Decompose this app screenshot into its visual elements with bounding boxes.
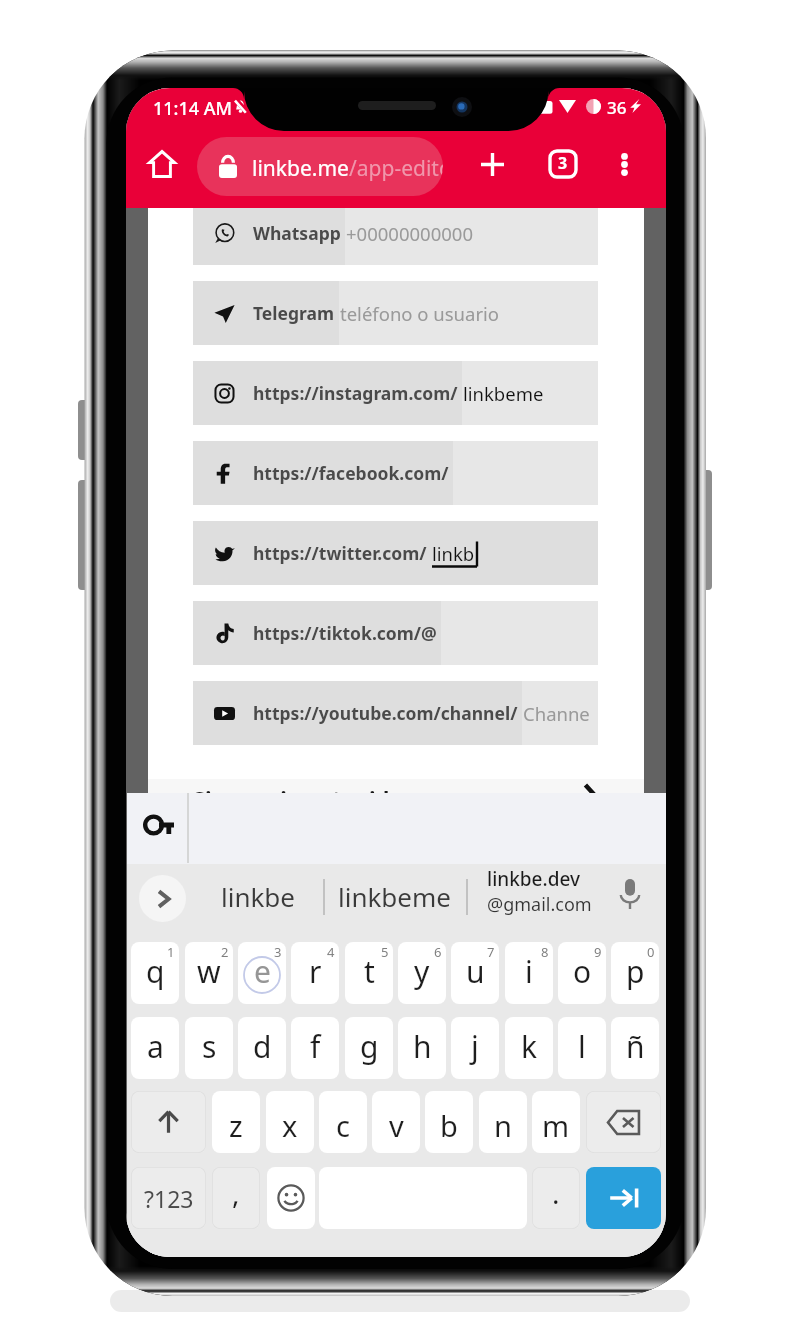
button[interactable]: More options bbox=[598, 135, 650, 193]
button[interactable]: https://twitter.com/ bbox=[193, 521, 598, 585]
button[interactable]: https://facebook.com/ bbox=[193, 441, 598, 505]
staticText: linkbe.me bbox=[252, 154, 349, 183]
staticText: https://twitter.com/ bbox=[253, 541, 427, 565]
button[interactable]: Voice input bbox=[609, 873, 651, 915]
button[interactable]: b bbox=[425, 1091, 473, 1153]
staticText: q bbox=[146, 951, 165, 992]
button[interactable]: Backspace bbox=[586, 1091, 661, 1153]
staticText: z bbox=[229, 1106, 243, 1145]
staticText: Whatsapp bbox=[253, 221, 341, 245]
button[interactable]: ñ bbox=[611, 1017, 659, 1079]
staticText: m bbox=[542, 1106, 570, 1145]
staticText: https://youtube.com/channel/ bbox=[253, 701, 518, 725]
button[interactable]: p bbox=[611, 942, 659, 1004]
button[interactable]: g bbox=[345, 1017, 393, 1079]
staticText: g bbox=[360, 1026, 379, 1067]
staticText: Channe bbox=[523, 701, 590, 726]
button[interactable]: Home bbox=[134, 135, 190, 193]
staticText: 3 bbox=[558, 152, 568, 174]
staticText: 9 bbox=[594, 943, 602, 961]
staticText: e bbox=[254, 951, 271, 992]
button[interactable]: linkbe.dev bbox=[487, 866, 592, 917]
button[interactable]: Telegram bbox=[193, 281, 598, 345]
button[interactable]: n bbox=[479, 1091, 527, 1153]
staticText: a bbox=[147, 1026, 164, 1067]
button[interactable]: Emoji bbox=[267, 1167, 315, 1229]
staticText: b bbox=[440, 1106, 458, 1145]
button[interactable]: x bbox=[266, 1091, 314, 1153]
button[interactable]: o bbox=[558, 942, 606, 1004]
button[interactable]: Whatsapp bbox=[193, 201, 598, 265]
button[interactable]: r bbox=[291, 942, 339, 1004]
staticText: @gmail.com bbox=[487, 892, 592, 917]
button[interactable]: w bbox=[185, 942, 233, 1004]
staticText: t bbox=[364, 951, 375, 992]
staticText: /app-edito bbox=[349, 154, 443, 183]
staticText: h bbox=[413, 1026, 432, 1067]
staticText: Telegram bbox=[253, 301, 335, 325]
button[interactable]: l bbox=[558, 1017, 606, 1079]
staticText: 7 bbox=[487, 943, 495, 961]
staticText: +00000000000 bbox=[346, 221, 473, 246]
staticText: c bbox=[336, 1106, 350, 1145]
staticText: https://facebook.com/ bbox=[253, 461, 449, 485]
button[interactable]: u bbox=[451, 942, 499, 1004]
button[interactable]: s bbox=[185, 1017, 233, 1079]
staticText: , bbox=[232, 1174, 240, 1212]
button[interactable]: , bbox=[212, 1167, 260, 1229]
staticText: k bbox=[521, 1026, 538, 1067]
staticText: r bbox=[309, 951, 322, 992]
button[interactable]: a bbox=[131, 1017, 179, 1079]
staticText: s bbox=[202, 1026, 217, 1067]
button[interactable]: https://instagram.com/ bbox=[193, 361, 598, 425]
button[interactable]: Shift bbox=[131, 1091, 206, 1153]
button[interactable]: Tabs bbox=[534, 135, 592, 193]
staticText: 11:14 AM bbox=[153, 96, 233, 121]
button[interactable]: e bbox=[238, 942, 286, 1004]
button[interactable]: v bbox=[372, 1091, 420, 1153]
staticText: https://tiktok.com/@ bbox=[253, 621, 437, 645]
button[interactable]: k bbox=[505, 1017, 553, 1079]
button[interactable]: Sigue mi contenido bbox=[148, 779, 644, 839]
staticText: linkb bbox=[432, 541, 475, 566]
staticText: y bbox=[414, 951, 430, 992]
staticText: l bbox=[578, 1026, 586, 1067]
button[interactable]: . bbox=[532, 1167, 580, 1229]
button[interactable]: linkbeme bbox=[338, 879, 451, 914]
staticText: linkbeme bbox=[463, 381, 544, 406]
staticText: ?123 bbox=[144, 1183, 194, 1214]
button[interactable]: h bbox=[398, 1017, 446, 1079]
button[interactable]: New tab bbox=[463, 135, 521, 193]
staticText: 5 bbox=[381, 943, 389, 961]
button[interactable]: https://tiktok.com/@ bbox=[193, 601, 598, 665]
staticText: v bbox=[389, 1106, 404, 1145]
staticText: i bbox=[525, 951, 533, 992]
button[interactable]: z bbox=[212, 1091, 260, 1153]
staticText: 8 bbox=[541, 943, 549, 961]
staticText: j bbox=[471, 1026, 479, 1067]
staticText: 36 bbox=[607, 96, 627, 119]
staticText: u bbox=[466, 951, 485, 992]
button[interactable]: d bbox=[238, 1017, 286, 1079]
staticText: o bbox=[573, 951, 592, 992]
button[interactable]: y bbox=[398, 942, 446, 1004]
button[interactable]: t bbox=[345, 942, 393, 1004]
button[interactable]: https://youtube.com/channel/ bbox=[193, 681, 598, 745]
button[interactable]: ?123 bbox=[131, 1167, 206, 1229]
button[interactable]: Next bbox=[586, 1167, 661, 1229]
staticText: teléfono o usuario bbox=[340, 301, 500, 326]
button[interactable]: m bbox=[532, 1091, 580, 1153]
staticText: d bbox=[253, 1026, 272, 1067]
staticText: 4 bbox=[327, 943, 335, 961]
staticText: w bbox=[197, 951, 221, 992]
button[interactable]: Expand suggestions bbox=[139, 875, 186, 922]
button[interactable]: q bbox=[131, 942, 179, 1004]
button[interactable]: linkbe bbox=[221, 879, 296, 914]
button[interactable]: linkbe.me bbox=[197, 137, 443, 196]
staticText: n bbox=[494, 1106, 512, 1145]
button[interactable]: j bbox=[451, 1017, 499, 1079]
button[interactable]: c bbox=[319, 1091, 367, 1153]
button[interactable]: f bbox=[291, 1017, 339, 1079]
button[interactable]: i bbox=[505, 942, 553, 1004]
